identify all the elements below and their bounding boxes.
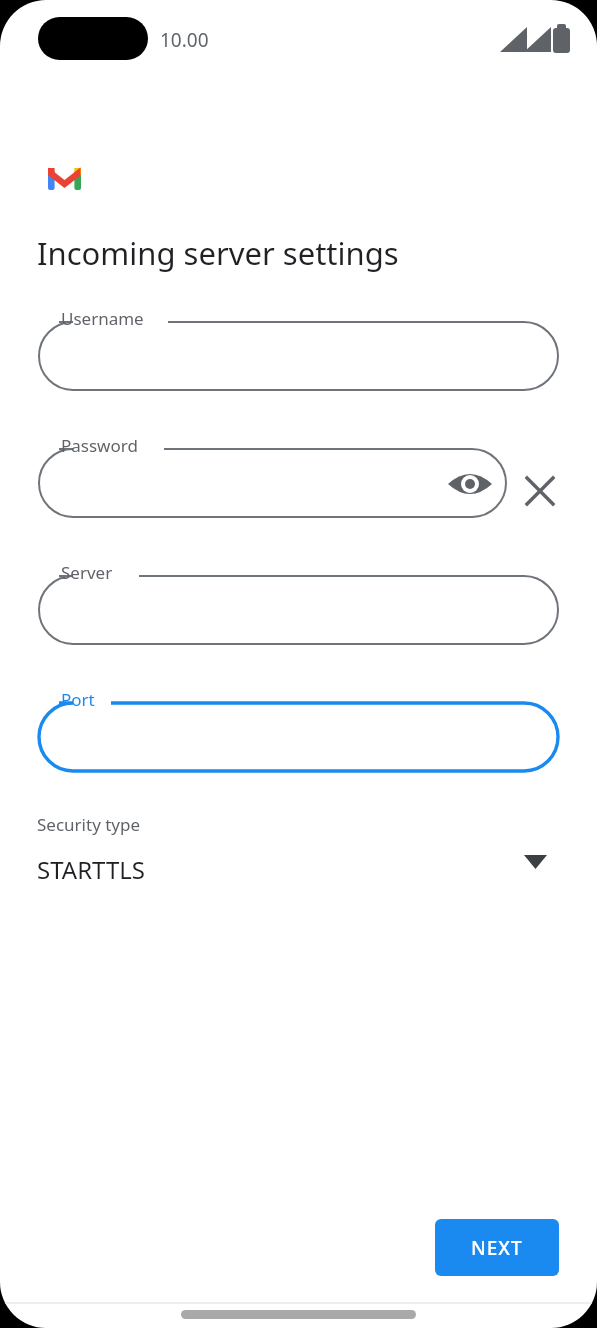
staticText: 10.00 — [160, 27, 209, 53]
button[interactable] — [39, 703, 558, 771]
button[interactable] — [39, 322, 558, 390]
button[interactable]: Clear — [516, 467, 564, 515]
staticText: Incoming server settings — [37, 232, 399, 274]
staticText: STARTTLS — [37, 853, 146, 886]
staticText: NEXT — [471, 1235, 523, 1261]
button[interactable]: NEXT — [435, 1219, 559, 1276]
staticText: Security type — [37, 813, 141, 836]
button[interactable] — [39, 576, 558, 644]
button[interactable] — [39, 449, 506, 517]
staticText: Server — [61, 561, 113, 584]
button[interactable] — [37, 806, 558, 898]
staticText: Port — [61, 688, 95, 711]
staticText: Password — [61, 434, 138, 457]
staticText: Username — [61, 307, 144, 330]
button[interactable]: Show password — [446, 460, 494, 508]
